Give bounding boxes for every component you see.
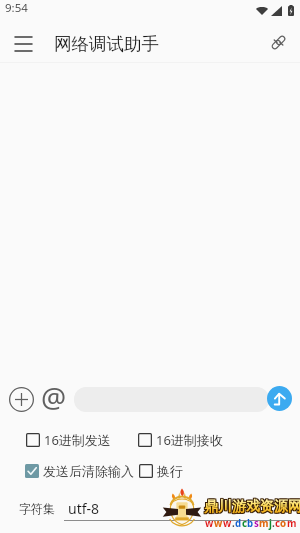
- staticText: d: [235, 517, 242, 530]
- staticText: m: [287, 517, 297, 530]
- button[interactable]: 发送后清除输入: [25, 461, 134, 481]
- staticText: 鼎川游戏资源网: [205, 497, 300, 515]
- button[interactable]: Send: [267, 386, 292, 411]
- staticText: s: [254, 517, 259, 530]
- staticText: 鼎川游戏资源网: [203, 498, 300, 516]
- staticText: 16进制接收: [156, 431, 223, 449]
- staticText: 鼎川游戏资源网: [205, 498, 300, 516]
- staticText: 鼎川游戏资源网: [203, 497, 300, 515]
- staticText: 鼎川游戏资源网: [204, 499, 300, 517]
- button[interactable]: Insert address: [38, 378, 70, 410]
- button[interactable]: Message input: [74, 387, 269, 412]
- staticText: j: [269, 517, 272, 530]
- staticText: w: [214, 517, 223, 530]
- button[interactable]: 换行: [139, 461, 183, 481]
- staticText: 字符集: [19, 501, 55, 516]
- staticText: 网络调试助手: [54, 33, 159, 55]
- button[interactable]: Open navigation menu: [6, 25, 40, 59]
- staticText: .: [272, 517, 275, 530]
- staticText: @: [41, 378, 67, 410]
- staticText: 鼎川游戏资源网: [204, 498, 300, 516]
- staticText: 16进制发送: [44, 431, 111, 449]
- staticText: .: [232, 517, 235, 530]
- staticText: w: [205, 517, 214, 530]
- button[interactable]: 16进制接收: [138, 430, 223, 450]
- staticText: 9:54: [5, 0, 28, 16]
- staticText: c: [275, 517, 280, 530]
- staticText: 鼎川游戏资源网: [203, 499, 300, 517]
- staticText: 发送后清除输入: [43, 463, 134, 479]
- staticText: 鼎川游戏资源网: [204, 497, 300, 515]
- staticText: 换行: [157, 463, 183, 479]
- staticText: m: [259, 517, 269, 530]
- button[interactable]: 16进制发送: [26, 430, 111, 450]
- staticText: w: [223, 517, 232, 530]
- staticText: utf-8: [68, 499, 100, 518]
- staticText: o: [280, 517, 287, 530]
- staticText: b: [247, 517, 254, 530]
- button[interactable]: Add attachment: [4, 382, 38, 416]
- button[interactable]: Disconnect: [262, 26, 294, 58]
- staticText: 鼎川游戏资源网: [205, 499, 300, 517]
- staticText: c: [242, 517, 247, 530]
